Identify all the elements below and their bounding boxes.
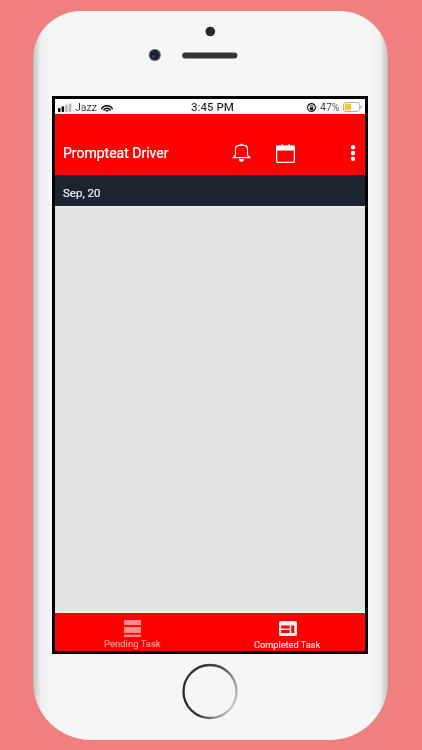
staticText: Pending Task [104, 638, 161, 649]
staticText: Sep, 20 [63, 186, 101, 199]
staticText: Prompteat Driver [63, 145, 169, 161]
staticText: Jazz [75, 101, 97, 113]
button[interactable]: Completed Task [210, 613, 365, 651]
button[interactable]: Pending Task [55, 613, 210, 651]
button[interactable]: Calendar [268, 133, 302, 173]
staticText: 47% [320, 101, 340, 113]
button[interactable]: Notifications [224, 133, 258, 173]
staticText: Completed Task [254, 639, 321, 650]
button[interactable]: More options [341, 133, 365, 173]
staticText: 3:45 PM [191, 100, 234, 113]
